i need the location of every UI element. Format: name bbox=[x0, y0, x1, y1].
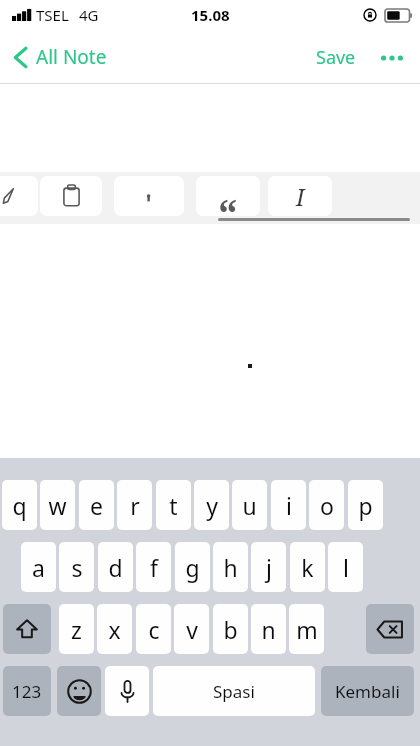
staticText: All Note bbox=[36, 44, 107, 70]
button[interactable]: Spasi bbox=[153, 666, 315, 716]
staticText: i bbox=[286, 490, 292, 521]
staticText: e bbox=[90, 490, 103, 521]
staticText: u bbox=[242, 490, 257, 521]
staticText: “ bbox=[218, 185, 238, 216]
staticText: s bbox=[71, 552, 83, 583]
button[interactable]: Kembali bbox=[321, 666, 414, 716]
button[interactable]: y bbox=[194, 480, 229, 530]
staticText: k bbox=[301, 552, 314, 583]
staticText: x bbox=[108, 614, 121, 645]
button[interactable]: h bbox=[213, 542, 248, 592]
staticText: r bbox=[130, 490, 140, 521]
staticText: p bbox=[358, 490, 373, 521]
button[interactable]: I bbox=[268, 176, 332, 216]
button[interactable]: “ bbox=[196, 176, 260, 216]
staticText: Spasi bbox=[213, 680, 255, 703]
button[interactable]: e bbox=[79, 480, 114, 530]
button[interactable]: j bbox=[251, 542, 286, 592]
button[interactable] bbox=[40, 176, 102, 216]
button[interactable]: Voice input bbox=[105, 666, 149, 716]
button[interactable]: u bbox=[232, 480, 267, 530]
staticText: v bbox=[186, 614, 198, 645]
button[interactable]: z bbox=[59, 604, 94, 654]
staticText: j bbox=[266, 552, 272, 583]
staticText: c bbox=[148, 614, 160, 645]
button[interactable]: f bbox=[136, 542, 171, 592]
button[interactable] bbox=[0, 176, 38, 216]
staticText: Kembali bbox=[335, 680, 400, 703]
button[interactable]: Numbers bbox=[3, 666, 51, 716]
button[interactable]: Save bbox=[310, 39, 362, 76]
staticText: w bbox=[48, 490, 67, 521]
button[interactable]: m bbox=[289, 604, 324, 654]
button[interactable]: v bbox=[174, 604, 209, 654]
staticText: 4G bbox=[79, 5, 99, 25]
button[interactable]: Shift bbox=[3, 604, 51, 654]
button[interactable] bbox=[114, 176, 184, 216]
button[interactable]: s bbox=[59, 542, 94, 592]
button[interactable]: n bbox=[251, 604, 286, 654]
button[interactable]: a bbox=[21, 542, 56, 592]
button[interactable]: w bbox=[40, 480, 75, 530]
staticText: o bbox=[320, 490, 334, 521]
staticText: q bbox=[12, 490, 27, 521]
staticText: I bbox=[296, 181, 305, 212]
button[interactable]: i bbox=[271, 480, 306, 530]
staticText: z bbox=[71, 614, 82, 645]
button[interactable]: g bbox=[175, 542, 210, 592]
staticText: 15.08 bbox=[191, 5, 230, 25]
button[interactable]: t bbox=[156, 480, 191, 530]
staticText: n bbox=[261, 614, 276, 645]
button[interactable]: r bbox=[117, 480, 152, 530]
button[interactable]: More options bbox=[374, 45, 410, 71]
staticText: TSEL bbox=[36, 5, 69, 25]
staticText: y bbox=[206, 490, 218, 521]
button[interactable]: q bbox=[2, 480, 37, 530]
button[interactable]: o bbox=[309, 480, 344, 530]
button[interactable]: l bbox=[328, 542, 363, 592]
button[interactable]: k bbox=[290, 542, 325, 592]
staticText: g bbox=[185, 552, 200, 583]
staticText: l bbox=[343, 552, 349, 583]
staticText: d bbox=[108, 552, 123, 583]
staticText: h bbox=[223, 552, 238, 583]
button[interactable]: c bbox=[136, 604, 171, 654]
button[interactable]: Emoji bbox=[57, 666, 101, 716]
staticText: 123 bbox=[12, 680, 42, 703]
staticText: t bbox=[169, 490, 178, 521]
button[interactable]: p bbox=[348, 480, 383, 530]
staticText: f bbox=[150, 552, 158, 583]
staticText: m bbox=[296, 614, 318, 645]
button[interactable]: All Note bbox=[0, 38, 117, 76]
button[interactable]: d bbox=[98, 542, 133, 592]
button[interactable]: b bbox=[213, 604, 248, 654]
button[interactable]: Backspace bbox=[366, 604, 414, 654]
staticText: Save bbox=[316, 45, 356, 70]
button[interactable]: x bbox=[97, 604, 132, 654]
staticText: b bbox=[223, 614, 238, 645]
staticText: a bbox=[32, 552, 45, 583]
